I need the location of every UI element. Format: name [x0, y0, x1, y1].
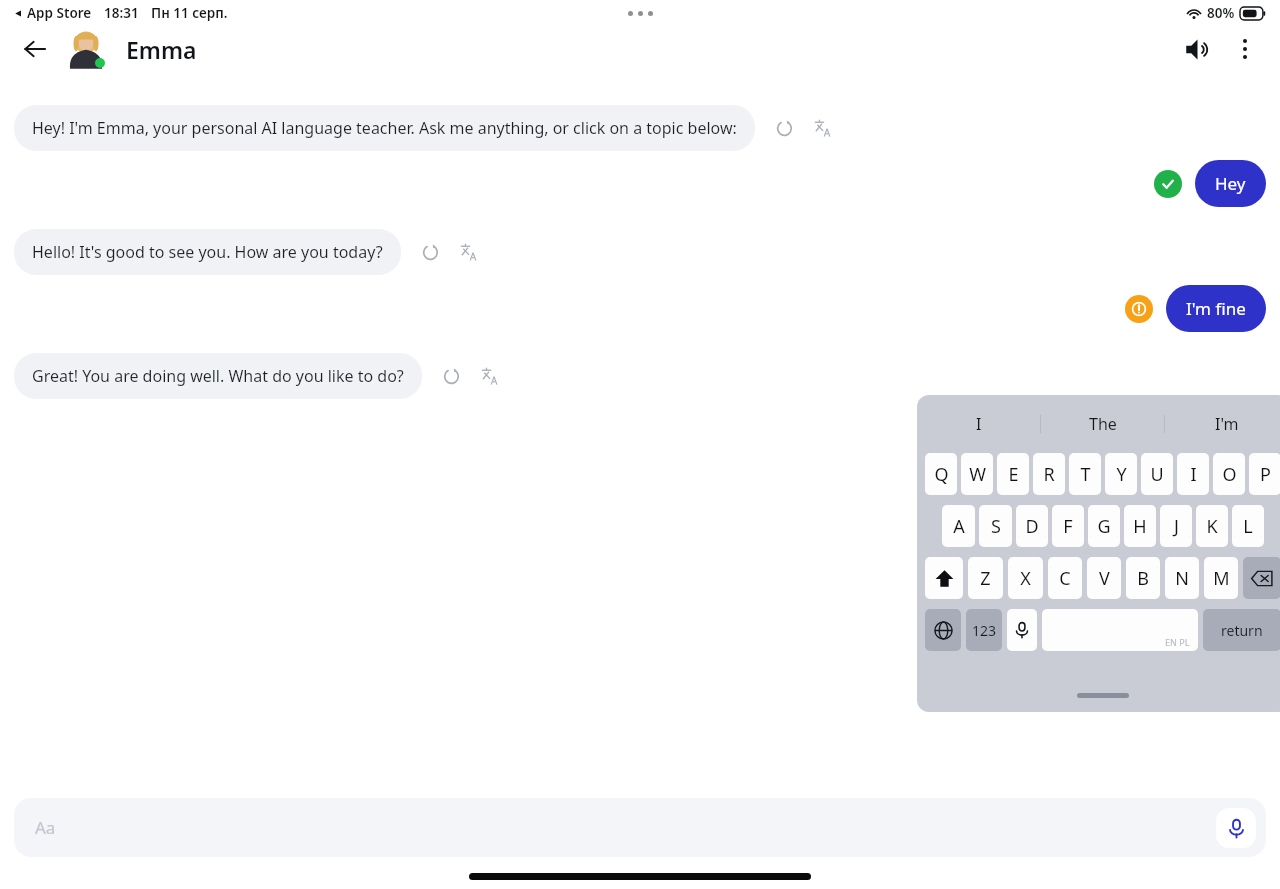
- button[interactable]: Hello! It's good to see you. How are you…: [14, 229, 401, 275]
- staticText: Emma: [126, 34, 197, 65]
- button[interactable]: Back: [18, 32, 52, 66]
- staticText: B: [1137, 566, 1149, 591]
- button[interactable]: W: [961, 453, 993, 495]
- button[interactable]: B: [1126, 557, 1160, 599]
- button[interactable]: G: [1088, 505, 1120, 547]
- button[interactable]: Voice input: [1216, 808, 1256, 848]
- staticText: Y: [1116, 462, 1127, 487]
- staticText: F: [1063, 514, 1073, 539]
- button[interactable]: Shift: [925, 557, 963, 599]
- button[interactable]: E: [997, 453, 1029, 495]
- button[interactable]: L: [1232, 505, 1264, 547]
- staticText: U: [1150, 462, 1164, 487]
- staticText: I'm fine: [1186, 297, 1246, 320]
- button[interactable]: O: [1213, 453, 1245, 495]
- staticText: Hey! I'm Emma, your personal AI language…: [32, 117, 737, 139]
- button[interactable]: More options: [1228, 32, 1262, 66]
- button[interactable]: Backspace: [1243, 557, 1280, 599]
- button[interactable]: F: [1052, 505, 1084, 547]
- button[interactable]: N: [1165, 557, 1199, 599]
- button[interactable]: Translate: [474, 361, 504, 391]
- button[interactable]: Correct: [1153, 169, 1183, 199]
- button[interactable]: S: [979, 505, 1012, 547]
- button[interactable]: return: [1203, 609, 1280, 651]
- button[interactable]: Hey: [1195, 160, 1266, 207]
- staticText: S: [991, 514, 1001, 539]
- button[interactable]: T: [1069, 453, 1101, 495]
- staticText: W: [969, 462, 986, 487]
- button[interactable]: A: [942, 505, 975, 547]
- button[interactable]: D: [1016, 505, 1048, 547]
- button[interactable]: I: [917, 395, 1041, 453]
- button[interactable]: Aa: [14, 798, 1266, 857]
- button[interactable]: Translate: [807, 113, 837, 143]
- button[interactable]: Dictation: [1007, 609, 1037, 651]
- button[interactable]: EN PL: [1042, 609, 1198, 651]
- staticText: G: [1097, 514, 1111, 539]
- button[interactable]: I: [1177, 453, 1209, 495]
- staticText: V: [1099, 566, 1110, 591]
- button[interactable]: Y: [1105, 453, 1137, 495]
- button[interactable]: I'm: [1165, 395, 1280, 453]
- staticText: C: [1059, 566, 1071, 591]
- staticText: Z: [980, 566, 991, 591]
- staticText: Пн 11 серп.: [151, 4, 228, 22]
- button[interactable]: M: [1204, 557, 1238, 599]
- button[interactable]: P: [1249, 453, 1280, 495]
- staticText: K: [1206, 514, 1218, 539]
- staticText: N: [1175, 566, 1189, 591]
- staticText: Great! You are doing well. What do you l…: [32, 365, 404, 387]
- staticText: App Store: [27, 4, 92, 22]
- staticText: Q: [934, 462, 949, 487]
- staticText: I: [1190, 462, 1197, 487]
- button[interactable]: Replay audio: [436, 361, 466, 391]
- staticText: L: [1243, 514, 1253, 539]
- staticText: Hello! It's good to see you. How are you…: [32, 241, 383, 263]
- staticText: X: [1020, 566, 1031, 591]
- staticText: J: [1174, 514, 1179, 539]
- button[interactable]: [66, 29, 106, 69]
- staticText: 123: [972, 621, 997, 640]
- button[interactable]: Q: [925, 453, 957, 495]
- button[interactable]: H: [1124, 505, 1156, 547]
- staticText: Aa: [35, 816, 56, 839]
- staticText: D: [1025, 514, 1039, 539]
- staticText: 18:31: [104, 4, 139, 22]
- button[interactable]: C: [1048, 557, 1082, 599]
- button[interactable]: K: [1196, 505, 1228, 547]
- staticText: E: [1008, 462, 1019, 487]
- button[interactable]: The: [1041, 395, 1165, 453]
- staticText: I'm: [1215, 413, 1239, 435]
- button[interactable]: U: [1141, 453, 1173, 495]
- staticText: O: [1222, 462, 1237, 487]
- button[interactable]: Needs attention: [1124, 294, 1154, 324]
- button[interactable]: J: [1160, 505, 1192, 547]
- staticText: T: [1080, 462, 1091, 487]
- staticText: A: [953, 514, 965, 539]
- button[interactable]: Z: [968, 557, 1003, 599]
- button[interactable]: Switch keyboard: [925, 609, 961, 651]
- button[interactable]: R: [1033, 453, 1065, 495]
- staticText: R: [1043, 462, 1055, 487]
- staticText: Hey: [1215, 172, 1246, 195]
- staticText: The: [1089, 413, 1117, 435]
- button[interactable]: Hey! I'm Emma, your personal AI language…: [14, 105, 755, 151]
- button[interactable]: V: [1087, 557, 1121, 599]
- staticText: H: [1133, 514, 1147, 539]
- button[interactable]: I'm fine: [1166, 285, 1266, 332]
- staticText: M: [1213, 566, 1230, 591]
- button[interactable]: X: [1008, 557, 1043, 599]
- button[interactable]: Sound: [1178, 30, 1216, 68]
- button[interactable]: Replay audio: [415, 237, 445, 267]
- staticText: return: [1221, 621, 1263, 640]
- button[interactable]: 123: [966, 609, 1002, 651]
- button[interactable]: Translate: [453, 237, 483, 267]
- staticText: P: [1260, 462, 1271, 487]
- button[interactable]: Great! You are doing well. What do you l…: [14, 353, 422, 399]
- staticText: 80%: [1207, 4, 1235, 22]
- button[interactable]: Replay audio: [769, 113, 799, 143]
- staticText: EN PL: [1165, 636, 1190, 648]
- staticText: I: [976, 413, 982, 435]
